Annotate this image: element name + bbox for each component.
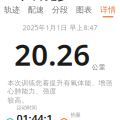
button[interactable]: 分段 <box>51 5 69 17</box>
button[interactable]: 图表 <box>75 5 93 17</box>
button[interactable]: 配速 <box>27 5 45 17</box>
staticText: 2025年1月1日 早上8:47 <box>22 23 97 32</box>
staticText: 运动时间 <box>16 104 36 111</box>
staticText: 公里 <box>92 63 106 71</box>
button[interactable]: 轨迹 <box>3 5 21 17</box>
staticText: 本次训练您着提升有氧体能、增强心肺能力、强度 <box>7 79 112 95</box>
staticText: 分段 <box>52 5 68 15</box>
staticText: 热量 <box>70 112 80 118</box>
staticText: 较高。 <box>7 96 28 104</box>
staticText: 户外跑步 <box>21 0 69 3</box>
staticText: 轨迹 <box>4 5 20 15</box>
button[interactable]: 详情 <box>99 5 117 17</box>
staticText: 详情 <box>100 5 116 15</box>
staticText: 20.26 <box>14 35 90 74</box>
staticText: 图表 <box>76 5 92 15</box>
staticText: 配速 <box>28 5 44 15</box>
staticText: 01:44:12 <box>16 111 52 120</box>
